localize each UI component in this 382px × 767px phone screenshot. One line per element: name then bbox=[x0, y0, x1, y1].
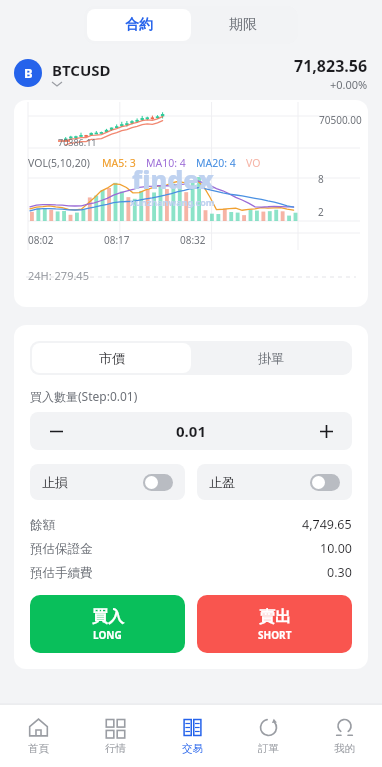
button[interactable]: B bbox=[14, 50, 368, 96]
staticText: 70386.11 bbox=[58, 136, 97, 148]
staticText: 我的 bbox=[334, 742, 355, 755]
staticText: 訂單 bbox=[258, 742, 279, 755]
staticText: 8 bbox=[318, 172, 324, 186]
staticText: 買入數量(Step:0.01) bbox=[30, 388, 138, 404]
staticText: LONG bbox=[93, 628, 122, 642]
button[interactable]: 掛單 bbox=[191, 343, 350, 373]
staticText: 71,823.56 bbox=[294, 55, 368, 77]
staticText: 止損 bbox=[42, 474, 68, 490]
staticText: +0.00% bbox=[330, 77, 368, 92]
button[interactable]: Increase quantity bbox=[300, 412, 352, 450]
staticText: 24H: 279.45 bbox=[28, 268, 89, 283]
button[interactable]: 行情 bbox=[77, 705, 154, 767]
staticText: 買入 bbox=[92, 607, 124, 627]
staticText: SHORT bbox=[258, 628, 292, 642]
button[interactable]: 首頁 bbox=[0, 705, 77, 767]
button[interactable]: 交易 bbox=[154, 705, 230, 767]
staticText: 08:02 bbox=[28, 233, 54, 247]
button[interactable]: 市價 bbox=[32, 343, 191, 373]
staticText: VO bbox=[246, 156, 261, 170]
button[interactable]: 賣出 bbox=[197, 595, 352, 653]
staticText: 行情 bbox=[105, 742, 126, 755]
staticText: MA5: 3 bbox=[102, 156, 136, 170]
staticText: 0.30 bbox=[327, 564, 352, 581]
staticText: 預估保證金 bbox=[30, 541, 93, 557]
staticText: findex bbox=[132, 162, 214, 196]
button[interactable]: 合約 bbox=[87, 9, 191, 41]
staticText: 預估手續費 bbox=[30, 565, 93, 581]
button[interactable]: 止盈 bbox=[197, 464, 352, 500]
staticText: 70500.00 bbox=[319, 113, 362, 127]
staticText: 首頁 bbox=[28, 742, 49, 755]
button[interactable]: 我的 bbox=[306, 705, 382, 767]
staticText: 止盈 bbox=[209, 474, 235, 490]
staticText: B bbox=[24, 64, 33, 82]
staticText: 賣出 bbox=[259, 607, 291, 627]
staticText: 2 bbox=[318, 205, 324, 219]
staticText: 10.00 bbox=[320, 540, 352, 557]
staticText: BTCUSD bbox=[52, 60, 111, 80]
staticText: 0.01 bbox=[176, 421, 206, 441]
staticText: 4,749.65 bbox=[302, 516, 352, 533]
staticText: VOL(5,10,20) bbox=[28, 156, 90, 170]
staticText: 掛單 bbox=[258, 350, 284, 366]
staticText: xunzhanwang.com bbox=[130, 196, 215, 208]
button[interactable]: 訂單 bbox=[230, 705, 306, 767]
button[interactable]: 買入 bbox=[30, 595, 185, 653]
staticText: 期限 bbox=[229, 16, 257, 34]
button[interactable]: 期限 bbox=[191, 9, 295, 41]
staticText: 餘額 bbox=[30, 517, 55, 533]
button[interactable]: Decrease quantity bbox=[30, 412, 82, 450]
staticText: MA20: 4 bbox=[196, 156, 236, 170]
staticText: 市價 bbox=[99, 350, 125, 366]
staticText: 合約 bbox=[125, 16, 153, 34]
staticText: 08:32 bbox=[180, 233, 206, 247]
staticText: 交易 bbox=[182, 742, 203, 755]
staticText: MA10: 4 bbox=[146, 156, 186, 170]
button[interactable]: 止損 bbox=[30, 464, 185, 500]
staticText: 08:17 bbox=[104, 233, 130, 247]
